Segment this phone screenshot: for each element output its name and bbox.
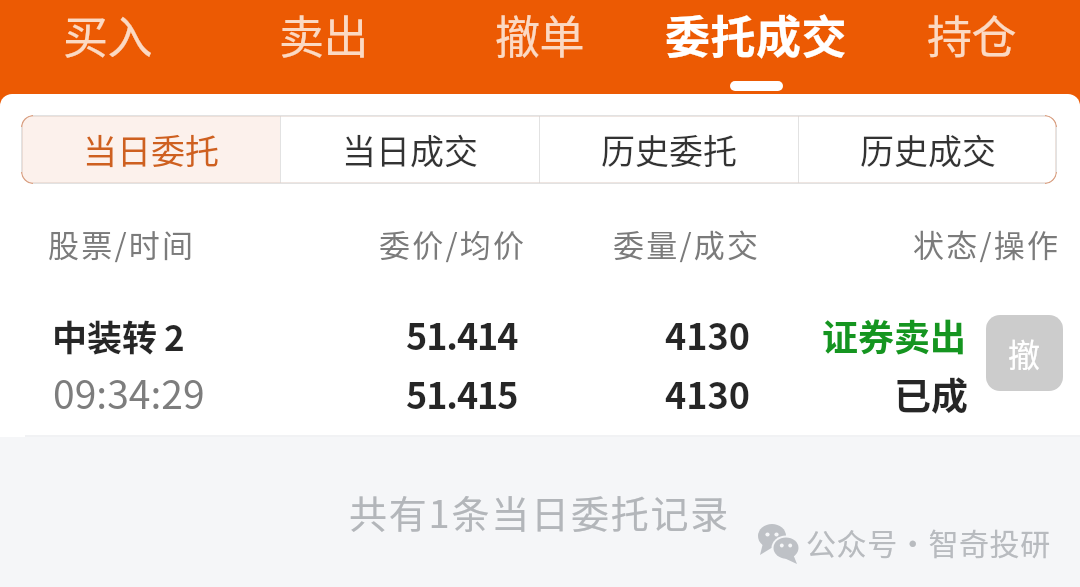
staticText: 51.415 <box>406 367 518 419</box>
button[interactable]: 撤单 <box>432 0 648 94</box>
staticText: 委价/均价 <box>379 221 527 266</box>
staticText: 09:34:29 <box>53 364 205 420</box>
other: WeChat <box>756 522 808 562</box>
staticText: 公众号·智奇投研 <box>806 520 1051 563</box>
staticText: 4130 <box>665 367 750 419</box>
staticText: 卖出 <box>279 2 369 67</box>
button[interactable]: 委托成交 <box>648 0 864 94</box>
staticText: 已成 <box>894 367 968 421</box>
button[interactable]: 当日委托 <box>21 115 280 184</box>
staticText: 买入 <box>63 2 153 67</box>
staticText: 历史成交 <box>860 125 996 174</box>
button[interactable]: 撤单 Cancel order <box>986 315 1063 391</box>
button[interactable]: 历史成交 <box>799 115 1057 184</box>
staticText: 撤 <box>1008 330 1041 376</box>
staticText: 状态/操作 <box>913 221 1061 266</box>
staticText: 当日委托 <box>83 125 219 174</box>
staticText: 撤单 <box>495 2 585 67</box>
staticText: 委量/成交 <box>613 221 761 266</box>
staticText: 历史委托 <box>601 125 737 174</box>
button[interactable]: 历史委托 <box>540 115 798 184</box>
button[interactable]: 买入 <box>0 0 216 94</box>
staticText: 当日成交 <box>342 125 478 174</box>
button[interactable]: 当日成交 <box>281 115 539 184</box>
staticText: 委托成交 <box>665 2 848 67</box>
staticText: 证券卖出 <box>822 309 967 361</box>
staticText: 4130 <box>665 308 750 360</box>
staticText: 51.414 <box>406 308 518 360</box>
button[interactable] <box>0 300 1080 416</box>
staticText: 共有1条当日委托记录 <box>349 484 731 539</box>
staticText: 股票/时间 <box>48 221 196 266</box>
staticText: 中装转 2 <box>52 310 185 361</box>
button[interactable]: 卖出 <box>216 0 432 94</box>
button[interactable]: 持仓 <box>864 0 1080 94</box>
staticText: 持仓 <box>927 2 1017 67</box>
